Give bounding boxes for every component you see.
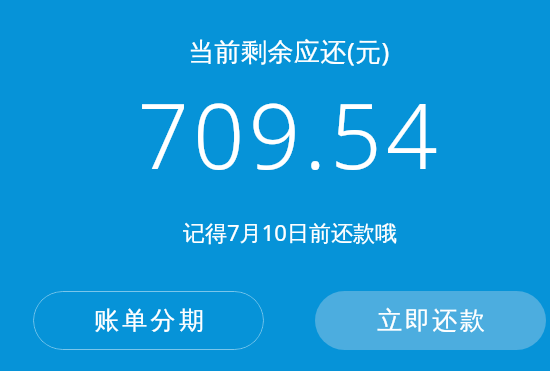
button[interactable]: 立即还款 xyxy=(315,291,546,350)
staticText: 立即还款 xyxy=(376,305,486,336)
staticText: 709.54 xyxy=(137,73,442,196)
button[interactable]: 账单分期 xyxy=(33,291,264,350)
staticText: 记得7月10日前还款哦 xyxy=(183,217,397,247)
staticText: 当前剩余应还(元) xyxy=(188,33,390,69)
staticText: 账单分期 xyxy=(94,305,208,336)
